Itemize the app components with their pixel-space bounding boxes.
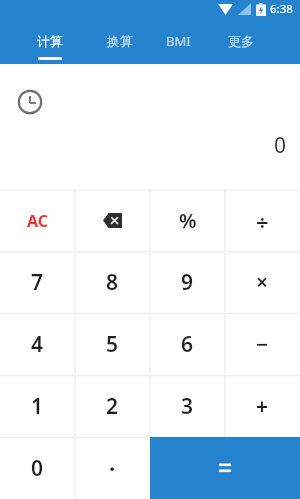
button[interactable]: 5 xyxy=(75,313,150,375)
staticText: 0 xyxy=(274,131,287,160)
button[interactable]: 更多 xyxy=(211,18,271,64)
staticText: 7 xyxy=(31,268,44,297)
button[interactable]: 1 xyxy=(0,375,75,437)
button[interactable]: 0 xyxy=(0,437,75,499)
staticText: 2 xyxy=(106,392,119,421)
staticText: − xyxy=(256,330,269,359)
button[interactable]: 3 xyxy=(150,375,225,437)
staticText: 8 xyxy=(106,268,119,297)
button[interactable]: 7 xyxy=(0,251,75,313)
staticText: 计算 xyxy=(37,33,63,49)
staticText: · xyxy=(109,453,116,483)
button[interactable] xyxy=(150,437,300,499)
staticText: 换算 xyxy=(107,33,133,49)
button[interactable]: 计算 xyxy=(20,18,80,64)
staticText: AC xyxy=(27,210,49,232)
button[interactable]: BMI xyxy=(148,18,208,64)
staticText: 5 xyxy=(106,330,119,359)
staticText: 4 xyxy=(31,330,44,359)
button[interactable]: + xyxy=(225,375,300,437)
staticText: 更多 xyxy=(228,33,254,49)
button[interactable]: × xyxy=(225,251,300,313)
button[interactable]: ÷ xyxy=(225,190,300,251)
staticText: 9 xyxy=(181,268,194,297)
button[interactable] xyxy=(75,190,150,251)
staticText: 6:38 xyxy=(270,1,293,17)
staticText: 3 xyxy=(181,392,194,421)
button[interactable]: − xyxy=(225,313,300,375)
staticText: + xyxy=(256,392,269,421)
button[interactable]: · xyxy=(75,437,150,499)
button[interactable]: 9 xyxy=(150,251,225,313)
button[interactable]: 8 xyxy=(75,251,150,313)
staticText: × xyxy=(256,268,269,297)
button[interactable] xyxy=(18,90,42,114)
staticText: BMI xyxy=(166,32,191,50)
staticText: 6 xyxy=(181,330,194,359)
button[interactable]: 4 xyxy=(0,313,75,375)
staticText: 1 xyxy=(31,392,44,421)
staticText: 0 xyxy=(31,454,44,483)
button[interactable]: 6 xyxy=(150,313,225,375)
staticText: ÷ xyxy=(256,206,269,236)
button[interactable]: 2 xyxy=(75,375,150,437)
button[interactable]: 换算 xyxy=(90,18,150,64)
button[interactable]: % xyxy=(150,190,225,251)
staticText: % xyxy=(179,207,197,234)
button[interactable]: AC xyxy=(0,190,75,251)
